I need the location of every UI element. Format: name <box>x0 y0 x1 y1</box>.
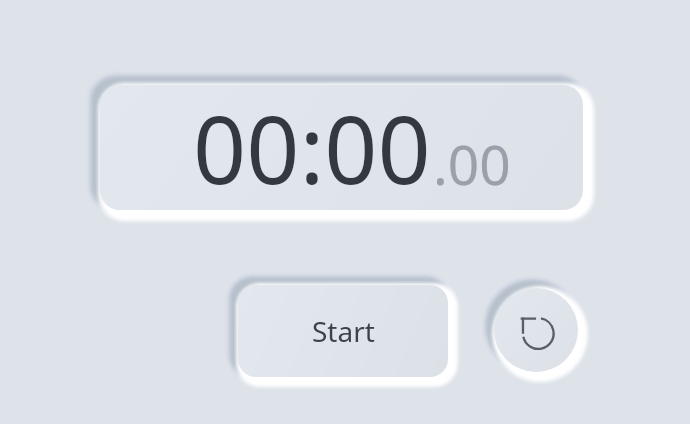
button[interactable]: 00:00 <box>100 85 583 210</box>
button[interactable]: Start <box>238 285 448 377</box>
staticText: .00 <box>433 126 511 201</box>
staticText: 00:00 <box>193 85 431 210</box>
staticText: Start <box>312 312 375 350</box>
button[interactable]: Reset <box>494 288 578 372</box>
